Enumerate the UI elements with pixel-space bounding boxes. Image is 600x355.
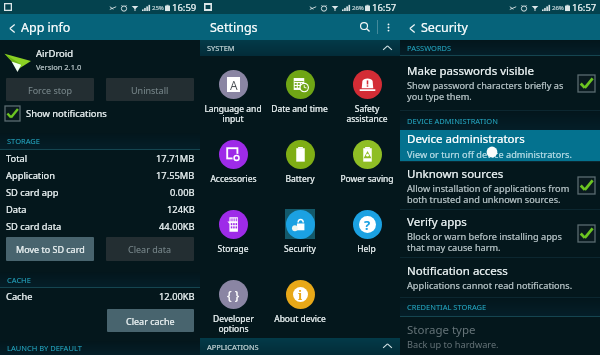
button[interactable]: Safety assistance <box>333 69 400 124</box>
staticText: Storage type <box>407 322 476 338</box>
staticText: Cache <box>6 290 33 303</box>
staticText: 16:59 <box>172 1 197 14</box>
staticText: Verify apps <box>407 214 467 230</box>
staticText: Show notifications <box>26 107 107 120</box>
staticText: 0.00B <box>170 186 195 199</box>
staticText: App info <box>21 19 71 36</box>
staticText: 17.55MB <box>156 169 195 182</box>
staticText: Power saving <box>340 173 394 185</box>
staticText: Clear cache <box>126 315 175 327</box>
staticText: Force stop <box>28 84 72 96</box>
staticText: Make passwords visible <box>407 63 534 79</box>
staticText: Security <box>421 19 468 36</box>
staticText: SD card app <box>6 186 59 199</box>
staticText: Language and input <box>204 103 262 124</box>
button[interactable]: Storage type <box>400 317 600 355</box>
staticText: STORAGE <box>7 136 40 146</box>
staticText: 26% <box>352 4 364 12</box>
staticText: PASSWORDS <box>407 43 452 53</box>
staticText: 26% <box>552 4 564 12</box>
staticText: Storage <box>217 243 249 255</box>
staticText: Unknown sources <box>407 166 504 182</box>
button[interactable]: Search <box>354 16 376 38</box>
staticText: Total <box>6 152 28 165</box>
staticText: AirDroid <box>36 47 74 60</box>
staticText: About device <box>274 313 326 325</box>
button[interactable]: AirDroid <box>0 40 200 78</box>
button[interactable]: ? <box>333 209 400 255</box>
staticText: 16:57 <box>372 1 397 14</box>
button[interactable]: Back <box>404 20 420 36</box>
staticText: 17.71MB <box>156 152 195 165</box>
button[interactable]: Power saving <box>333 139 400 185</box>
staticText: View or turn off device administrators. <box>407 148 572 161</box>
button[interactable]: i <box>266 279 333 325</box>
button[interactable]: Date and time <box>266 69 333 115</box>
button[interactable]: Force stop <box>6 78 94 101</box>
staticText: APPLICATIONS <box>207 342 259 352</box>
button[interactable]: Show notifications <box>0 103 200 123</box>
staticText: 16:57 <box>572 1 597 14</box>
staticText: Help <box>357 243 376 255</box>
staticText: 44.00KB <box>159 220 195 233</box>
staticText: A <box>230 77 238 92</box>
staticText: Accessories <box>210 173 257 185</box>
button[interactable]: Clear cache <box>107 309 194 332</box>
button[interactable]: Security <box>266 209 333 255</box>
button[interactable]: Notification access <box>400 258 600 297</box>
staticText: { } <box>227 287 240 303</box>
staticText: Show password characters briefly as you … <box>407 79 564 103</box>
button[interactable]: SD card data <box>0 218 200 235</box>
staticText: Uninstall <box>131 84 169 96</box>
staticText: SYSTEM <box>207 43 235 53</box>
staticText: ? <box>364 216 371 233</box>
button[interactable]: A <box>200 69 266 124</box>
staticText: 25% <box>152 4 164 12</box>
staticText: Battery <box>285 173 315 185</box>
button[interactable]: Uninstall <box>106 78 194 101</box>
button[interactable]: Storage <box>200 209 266 255</box>
button[interactable]: Move to SD card <box>6 237 94 261</box>
staticText: Notification access <box>407 263 508 279</box>
staticText: DEVICE ADMINISTRATION <box>407 116 498 126</box>
staticText: Data <box>6 203 27 216</box>
staticText: SD card data <box>6 220 62 233</box>
button[interactable]: More options <box>378 17 398 37</box>
button[interactable]: Battery <box>266 139 333 185</box>
staticText: 124KB <box>167 203 195 216</box>
button[interactable]: Application <box>0 167 200 184</box>
button[interactable]: Unknown sources <box>400 162 600 209</box>
staticText: CACHE <box>7 275 31 285</box>
staticText: Safety assistance <box>346 103 388 124</box>
button[interactable]: Cache <box>0 288 200 305</box>
staticText: Allow installation of applications from … <box>407 182 570 206</box>
button[interactable]: Device administrators <box>400 130 600 161</box>
button[interactable]: SD card app <box>0 184 200 201</box>
button[interactable]: Data <box>0 201 200 218</box>
button[interactable]: Make passwords visible <box>400 56 600 110</box>
staticText: 12.00KB <box>159 290 195 303</box>
button[interactable]: Total <box>0 150 200 167</box>
button[interactable]: Verify apps <box>400 210 600 257</box>
button[interactable]: { } <box>200 279 266 334</box>
staticText: Developer options <box>213 313 254 334</box>
staticText: Clear data <box>128 243 172 255</box>
button[interactable]: Back <box>4 20 20 36</box>
staticText: Application <box>6 169 55 182</box>
staticText: Version 2.1.0 <box>36 62 82 72</box>
staticText: Block or warn before installing apps tha… <box>407 230 562 254</box>
staticText: Security <box>284 243 316 255</box>
staticText: Settings <box>210 19 258 36</box>
staticText: Applications cannot read notifications. <box>407 279 573 292</box>
staticText: Date and time <box>271 103 328 115</box>
button[interactable]: Clear data <box>106 237 194 261</box>
button[interactable]: Accessories <box>200 139 266 185</box>
staticText: Move to SD card <box>16 243 85 255</box>
staticText: Back up to hardware. <box>407 338 499 351</box>
staticText: LAUNCH BY DEFAULT <box>7 343 82 353</box>
staticText: i <box>298 287 303 302</box>
staticText: CREDENTIAL STORAGE <box>407 302 487 312</box>
staticText: Device administrators <box>407 131 525 147</box>
